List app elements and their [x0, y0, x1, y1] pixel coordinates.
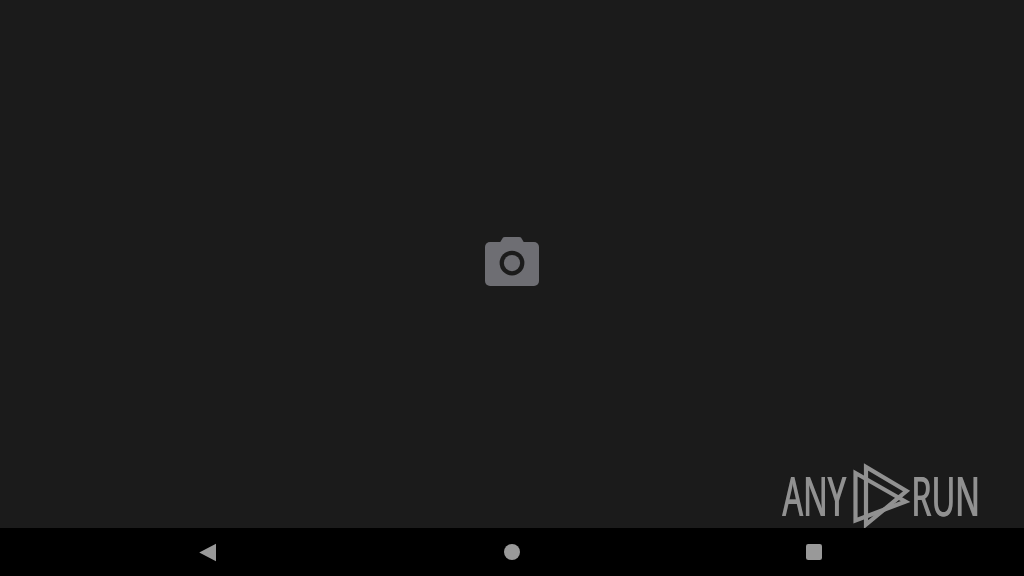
button[interactable]: Back	[160, 528, 256, 576]
staticText: RUN	[912, 458, 981, 532]
staticText: ANY	[782, 458, 846, 532]
staticText: RUN	[911, 458, 980, 532]
button[interactable]: Recent apps	[766, 528, 862, 576]
button[interactable]: No preview available	[485, 237, 539, 286]
button[interactable]: Home	[464, 528, 560, 576]
staticText: ANY	[783, 458, 847, 532]
